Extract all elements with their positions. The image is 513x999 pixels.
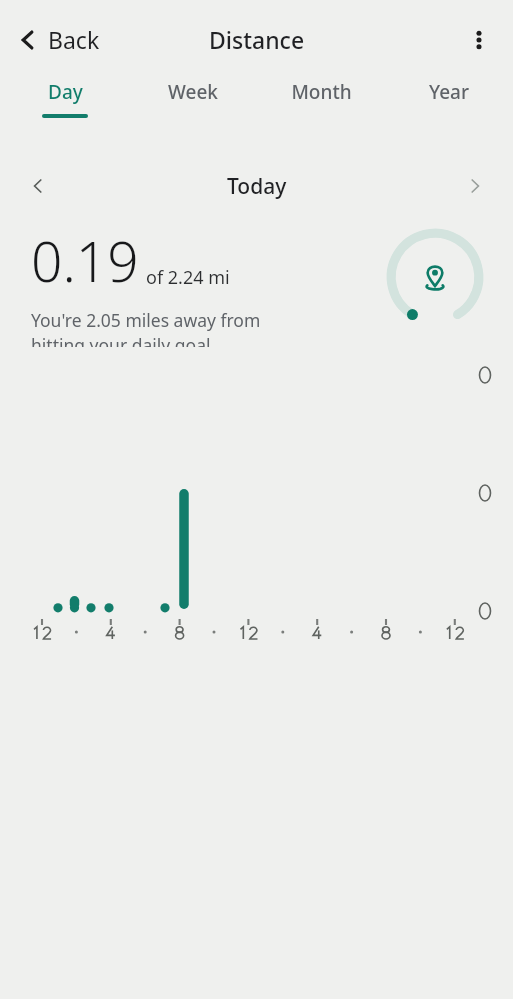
staticText: Back xyxy=(48,24,100,55)
staticText: 0.19 xyxy=(31,223,139,298)
button[interactable]: Day xyxy=(0,79,129,118)
button[interactable]: Year xyxy=(385,79,513,118)
button[interactable]: Previous day xyxy=(16,164,60,208)
button[interactable]: Back xyxy=(10,18,106,61)
button[interactable]: More options xyxy=(457,18,501,62)
staticText: Year xyxy=(429,79,469,105)
staticText: Distance xyxy=(209,24,305,55)
staticText: Week xyxy=(168,79,218,105)
button[interactable]: Next day xyxy=(453,164,497,208)
staticText: of 2.24 mi xyxy=(146,265,230,290)
button[interactable]: Today xyxy=(219,168,295,205)
staticText: You're 2.05 miles away from hitting your… xyxy=(31,308,261,347)
button[interactable]: Distance goal progress xyxy=(383,225,487,329)
button[interactable]: Month xyxy=(257,79,385,118)
button[interactable]: Week xyxy=(129,79,257,118)
staticText: Day xyxy=(48,79,83,105)
staticText: Month xyxy=(291,79,352,105)
